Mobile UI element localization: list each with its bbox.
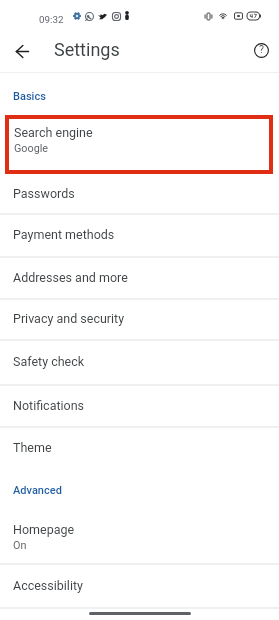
staticText: Notifications — [13, 398, 85, 413]
staticText: Safety check — [13, 354, 85, 369]
button[interactable]: Accessibility — [0, 563, 279, 607]
staticText: ? — [259, 43, 264, 55]
button[interactable]: Search engine — [5, 115, 273, 174]
staticText: Passwords — [13, 186, 75, 201]
staticText: Addresses and more — [13, 270, 128, 285]
button[interactable]: Navigate up — [5, 34, 39, 68]
staticText: Google — [14, 142, 49, 155]
button[interactable]: Privacy and security — [0, 298, 279, 339]
staticText: Basics — [13, 90, 46, 103]
staticText: Theme — [13, 440, 52, 455]
button[interactable]: Passwords — [0, 174, 279, 213]
staticText: Advanced — [13, 484, 62, 497]
button[interactable]: Safety check — [0, 339, 279, 384]
staticText: Settings — [54, 39, 120, 60]
button[interactable]: Help and feedback — [244, 34, 278, 68]
button[interactable]: Payment methods — [0, 213, 279, 256]
button[interactable]: Notifications — [0, 384, 279, 426]
staticText: Privacy and security — [13, 311, 125, 326]
staticText: Payment methods — [13, 227, 115, 242]
button[interactable]: Addresses and more — [0, 256, 279, 299]
staticText: 09:32 — [39, 14, 64, 25]
staticText: Search engine — [14, 125, 93, 140]
staticText: Homepage — [13, 522, 75, 537]
button[interactable]: Theme — [0, 426, 279, 469]
staticText: Accessibility — [13, 578, 83, 593]
staticText: On — [13, 539, 27, 552]
button[interactable]: Homepage — [0, 519, 279, 563]
